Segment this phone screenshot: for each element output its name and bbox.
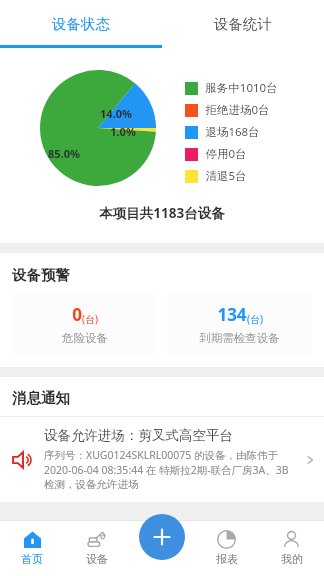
staticText: 设备 — [86, 552, 108, 566]
staticText: 134 — [217, 303, 247, 326]
button[interactable]: 新增 — [139, 514, 185, 560]
staticText: 本项目共1183台设备 — [99, 204, 225, 222]
staticText: 设备状态 — [52, 15, 110, 33]
staticText: 消息通知 — [12, 389, 70, 407]
staticText: 设备统计 — [214, 15, 272, 33]
staticText: 报表 — [216, 552, 238, 566]
staticText: 到期需检查设备 — [199, 331, 280, 345]
staticText: 我的 — [281, 552, 303, 566]
staticText: 1.0% — [110, 124, 136, 139]
staticText: 停用0台 — [205, 146, 247, 162]
button[interactable]: 设备统计 — [162, 0, 324, 48]
button[interactable]: 设备状态 — [0, 0, 162, 48]
button[interactable]: 首页 — [0, 520, 64, 576]
staticText: 0 — [72, 303, 82, 326]
button[interactable]: 0 — [12, 293, 157, 355]
button[interactable]: 我的 — [259, 520, 324, 576]
staticText: 序列号：XUG0124SKLRL00075 的设备，由陈伟于 2020-06-0… — [44, 448, 300, 492]
other: 语音通知 — [10, 447, 36, 473]
staticText: 14.0% — [100, 106, 132, 121]
button[interactable]: 报表 — [194, 520, 259, 576]
staticText: 首页 — [21, 552, 43, 566]
button[interactable]: 134 — [167, 293, 312, 355]
staticText: 设备允许进场：剪叉式高空平台 — [44, 427, 233, 444]
staticText: 拒绝进场0台 — [205, 102, 270, 118]
staticText: 服务中1010台 — [205, 80, 278, 96]
staticText: 清退5台 — [205, 168, 247, 184]
staticText: 危险设备 — [62, 331, 108, 345]
staticText: (台) — [82, 312, 98, 326]
staticText: (台) — [247, 312, 263, 326]
staticText: 设备预警 — [12, 266, 70, 284]
staticText: 退场168台 — [205, 124, 260, 140]
button[interactable]: 语音通知 — [0, 417, 324, 502]
button[interactable]: 设备 — [64, 520, 129, 576]
staticText: 85.0% — [48, 146, 80, 161]
